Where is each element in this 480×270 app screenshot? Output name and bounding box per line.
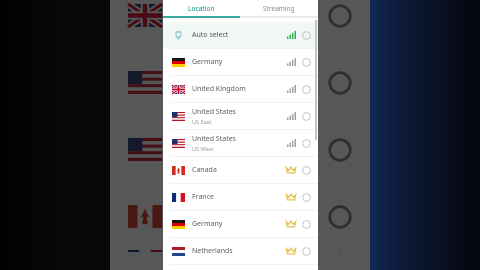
button[interactable]: Netherlands (163, 238, 318, 264)
staticText: Location (188, 4, 215, 13)
staticText: Streaming (263, 4, 295, 13)
staticText: Germany (192, 57, 223, 67)
staticText: France (192, 192, 214, 202)
staticText: United States (182, 129, 288, 152)
staticText: United States (192, 134, 236, 144)
button[interactable]: United States (163, 103, 318, 129)
staticText: United States (192, 107, 236, 117)
staticText: Canada (182, 205, 243, 228)
staticText: France (182, 250, 236, 252)
button[interactable]: United Kingdom (163, 76, 318, 102)
staticText: US West (182, 154, 229, 170)
button[interactable]: France (163, 184, 318, 210)
button[interactable]: Canada (163, 157, 318, 183)
staticText: US East (192, 118, 212, 125)
button[interactable]: United States (163, 130, 318, 156)
button[interactable]: Location (163, 0, 240, 16)
button[interactable]: Germany (163, 211, 318, 237)
staticText: Netherlands (192, 246, 233, 256)
staticText: Canada (192, 165, 217, 175)
staticText: US East (182, 87, 224, 103)
button[interactable]: Germany (163, 49, 318, 75)
staticText: United Kingdom (182, 4, 288, 27)
button[interactable]: Auto select (163, 22, 318, 48)
staticText: Germany (192, 219, 223, 229)
staticText: Auto select (192, 30, 229, 40)
staticText: US West (192, 145, 214, 152)
staticText: United Kingdom (192, 84, 246, 94)
staticText: United States (182, 62, 288, 85)
button[interactable]: Streaming (240, 0, 318, 16)
